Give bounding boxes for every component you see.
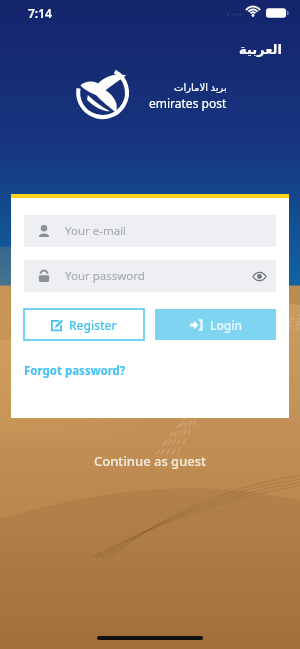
staticText: العربية <box>239 42 282 57</box>
button[interactable]: Continue as guest <box>84 448 217 474</box>
button[interactable]: Register <box>24 309 144 340</box>
button[interactable]: العربية <box>235 38 286 61</box>
staticText: Continue as guest <box>94 452 207 470</box>
button[interactable]: Login <box>155 309 276 340</box>
button[interactable]: Show password <box>243 272 276 281</box>
button[interactable]: Your e-mail <box>24 215 276 247</box>
staticText: Forgot password? <box>24 363 126 379</box>
button[interactable]: Forgot password? <box>24 360 126 382</box>
button[interactable]: Your password <box>24 260 276 292</box>
staticText: Login <box>210 317 242 333</box>
staticText: Register <box>69 317 117 333</box>
staticText: emirates post <box>149 95 227 111</box>
staticText: Your password <box>65 268 145 284</box>
staticText: بريد الامارات <box>174 80 227 94</box>
staticText: Your e-mail <box>65 223 127 239</box>
staticText: 7:14 <box>28 5 52 21</box>
